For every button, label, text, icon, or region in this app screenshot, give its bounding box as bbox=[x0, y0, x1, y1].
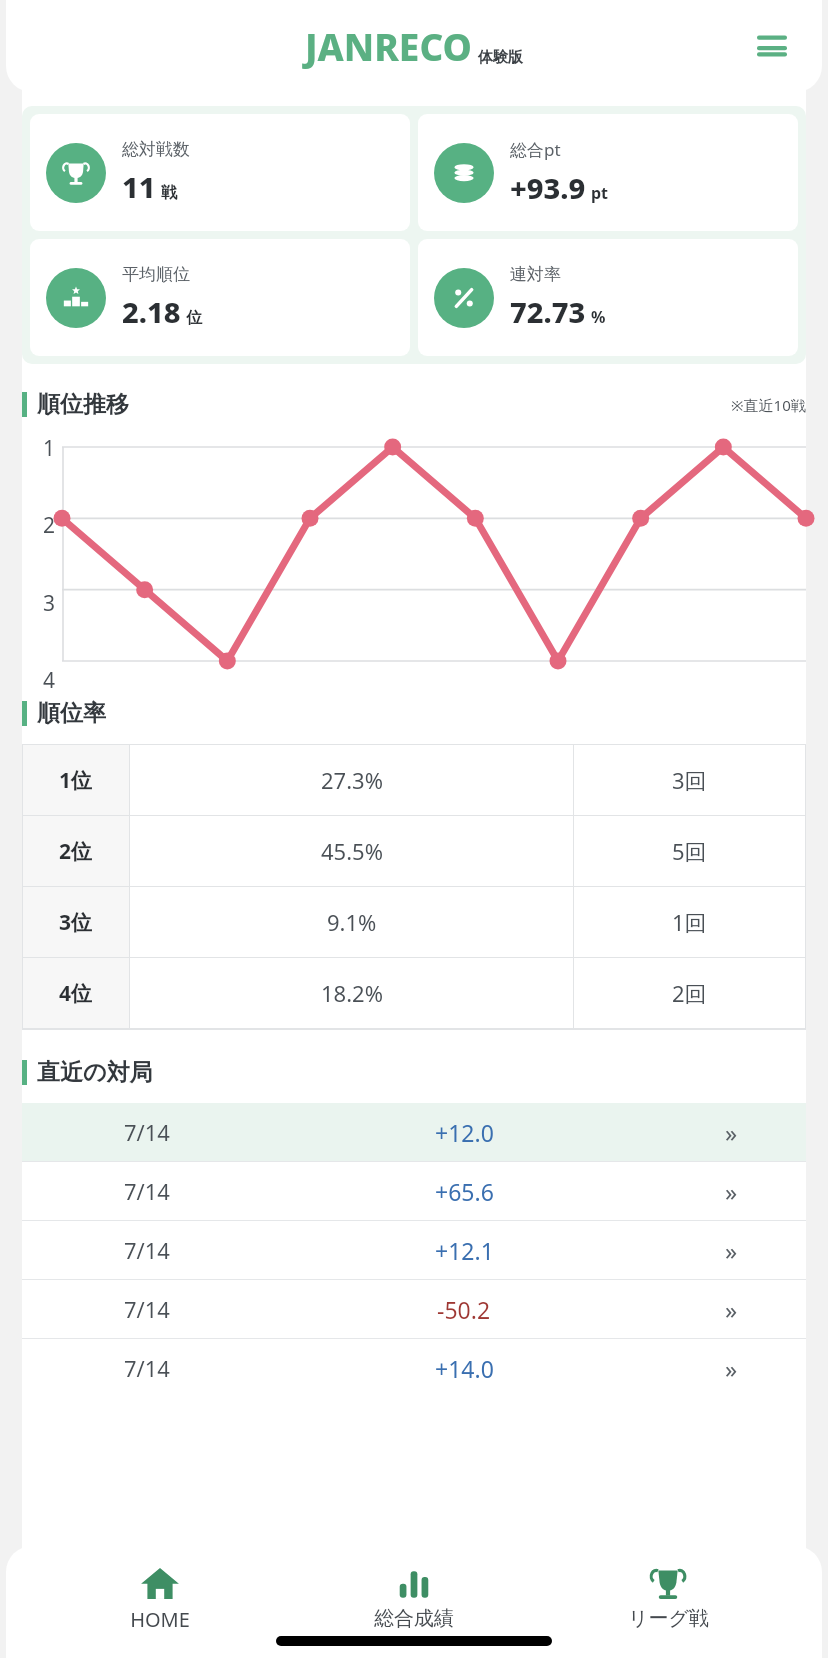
staticText: 2回 bbox=[672, 978, 707, 1008]
staticText: +14.0 bbox=[435, 1353, 494, 1384]
button[interactable]: Menu bbox=[748, 22, 796, 70]
staticText: 4 bbox=[43, 666, 56, 695]
staticText: 45.5% bbox=[321, 836, 383, 866]
staticText: 3回 bbox=[672, 765, 707, 795]
staticText: pt bbox=[591, 182, 609, 204]
staticText: +65.6 bbox=[435, 1176, 494, 1207]
staticText: ※直近10戦 bbox=[731, 395, 806, 415]
button[interactable]: 7/14 bbox=[22, 1103, 806, 1161]
staticText: 7/14 bbox=[124, 1235, 170, 1265]
staticText: JANRECO bbox=[305, 21, 472, 71]
staticText: 11 bbox=[122, 167, 156, 206]
button[interactable]: 連対率 bbox=[418, 239, 798, 356]
staticText: 戦 bbox=[161, 183, 177, 203]
staticText: +12.0 bbox=[435, 1117, 494, 1148]
staticText: » bbox=[725, 1116, 738, 1149]
staticText: 3位 bbox=[59, 908, 93, 937]
button[interactable]: 総合成績 bbox=[314, 1558, 514, 1635]
staticText: 7/14 bbox=[124, 1294, 170, 1324]
staticText: % bbox=[591, 306, 606, 328]
staticText: -50.2 bbox=[437, 1294, 491, 1325]
staticText: 3 bbox=[43, 589, 56, 618]
staticText: 2 bbox=[43, 511, 56, 540]
staticText: 72.73 bbox=[510, 292, 586, 331]
staticText: 位 bbox=[186, 308, 202, 328]
button[interactable]: 7/14 bbox=[22, 1162, 806, 1220]
staticText: 直近の対局 bbox=[37, 1058, 153, 1087]
button[interactable]: リーグ戦 bbox=[568, 1558, 768, 1635]
button[interactable]: 7/14 bbox=[22, 1221, 806, 1279]
staticText: 総合pt bbox=[510, 138, 561, 161]
staticText: 総合成績 bbox=[374, 1606, 454, 1631]
staticText: 1位 bbox=[59, 766, 93, 795]
staticText: HOME bbox=[130, 1606, 190, 1633]
staticText: 2.18 bbox=[122, 292, 181, 331]
staticText: 7/14 bbox=[124, 1117, 170, 1147]
button[interactable]: 総対戦数 bbox=[30, 114, 410, 231]
staticText: » bbox=[725, 1234, 738, 1267]
staticText: » bbox=[725, 1293, 738, 1326]
staticText: 4位 bbox=[59, 979, 93, 1008]
staticText: 1 bbox=[43, 434, 56, 463]
button[interactable]: 7/14 bbox=[22, 1280, 806, 1338]
button[interactable]: 平均順位 bbox=[30, 239, 410, 356]
staticText: » bbox=[725, 1352, 738, 1385]
staticText: 7/14 bbox=[124, 1176, 170, 1206]
staticText: 9.1% bbox=[327, 907, 377, 937]
staticText: +93.9 bbox=[510, 168, 586, 207]
staticText: 27.3% bbox=[321, 765, 383, 795]
staticText: 総対戦数 bbox=[122, 139, 190, 160]
staticText: 体験版 bbox=[478, 48, 523, 67]
staticText: 5回 bbox=[672, 836, 707, 866]
button[interactable]: HOME bbox=[60, 1558, 260, 1637]
button[interactable]: 総合pt bbox=[418, 114, 798, 231]
staticText: +12.1 bbox=[435, 1235, 494, 1266]
staticText: » bbox=[725, 1175, 738, 1208]
staticText: 18.2% bbox=[321, 978, 383, 1008]
button[interactable]: 7/14 bbox=[22, 1339, 806, 1397]
staticText: 7/14 bbox=[124, 1353, 170, 1383]
staticText: 順位推移 bbox=[37, 390, 129, 419]
staticText: 順位率 bbox=[37, 699, 106, 728]
staticText: 1回 bbox=[672, 907, 707, 937]
staticText: 2位 bbox=[59, 837, 93, 866]
staticText: 平均順位 bbox=[122, 264, 190, 285]
staticText: リーグ戦 bbox=[628, 1606, 709, 1631]
staticText: 連対率 bbox=[510, 264, 561, 285]
